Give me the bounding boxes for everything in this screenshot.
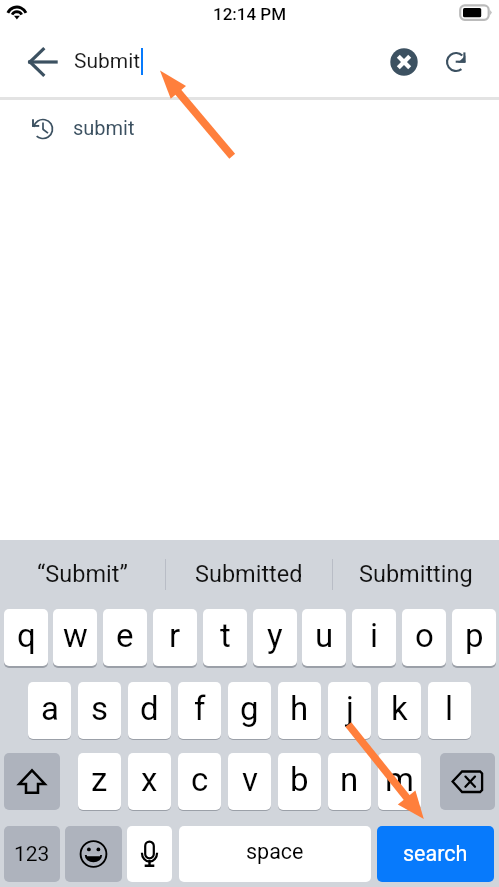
button[interactable]: “Submit” bbox=[0, 540, 165, 609]
button[interactable]: e bbox=[103, 609, 147, 666]
button[interactable]: j bbox=[328, 682, 371, 739]
staticText: 123 bbox=[14, 842, 50, 867]
button[interactable]: Submitted bbox=[166, 540, 332, 609]
staticText: k bbox=[391, 689, 408, 728]
button[interactable]: space bbox=[179, 826, 371, 882]
button[interactable]: search bbox=[377, 826, 494, 882]
staticText: l bbox=[445, 689, 454, 728]
staticText: submit bbox=[73, 116, 135, 139]
button[interactable]: q bbox=[4, 609, 48, 666]
button[interactable]: Clear bbox=[385, 43, 423, 81]
staticText: o bbox=[415, 616, 434, 655]
button[interactable]: n bbox=[328, 753, 371, 810]
staticText: x bbox=[141, 760, 158, 799]
button[interactable]: submit bbox=[0, 100, 499, 159]
staticText: a bbox=[41, 689, 59, 728]
button[interactable]: x bbox=[128, 753, 171, 810]
staticText: m bbox=[385, 760, 414, 799]
button[interactable]: o bbox=[402, 609, 446, 666]
button[interactable]: d bbox=[128, 682, 171, 739]
staticText: q bbox=[17, 616, 36, 655]
button[interactable]: s bbox=[78, 682, 121, 739]
button[interactable]: v bbox=[228, 753, 271, 810]
button[interactable]: u bbox=[302, 609, 346, 666]
staticText: 12:14 PM bbox=[213, 4, 287, 24]
staticText: c bbox=[191, 760, 209, 799]
staticText: space bbox=[246, 839, 304, 864]
button[interactable]: Shift bbox=[4, 753, 60, 810]
staticText: i bbox=[370, 616, 379, 655]
button[interactable]: y bbox=[253, 609, 297, 666]
button[interactable]: t bbox=[203, 609, 247, 666]
button[interactable]: Refresh bbox=[437, 43, 475, 81]
button[interactable]: Submitting bbox=[333, 540, 499, 609]
staticText: j bbox=[346, 689, 354, 728]
button[interactable]: i bbox=[352, 609, 396, 666]
staticText: z bbox=[91, 760, 108, 799]
staticText: e bbox=[116, 616, 134, 655]
staticText: “Submit” bbox=[37, 560, 128, 588]
staticText: s bbox=[91, 689, 109, 728]
button[interactable]: c bbox=[178, 753, 221, 810]
button[interactable]: w bbox=[53, 609, 97, 666]
button[interactable]: f bbox=[178, 682, 221, 739]
button[interactable]: g bbox=[228, 682, 271, 739]
button[interactable]: h bbox=[278, 682, 321, 739]
button[interactable]: p bbox=[452, 609, 496, 666]
staticText: f bbox=[194, 689, 206, 728]
button[interactable]: Emoji bbox=[65, 826, 122, 882]
button[interactable]: k bbox=[378, 682, 421, 739]
button[interactable]: 123 bbox=[4, 826, 60, 882]
staticText: p bbox=[465, 616, 484, 655]
staticText: u bbox=[315, 616, 334, 655]
button[interactable]: a bbox=[28, 682, 71, 739]
staticText: h bbox=[290, 689, 309, 728]
button[interactable]: r bbox=[153, 609, 197, 666]
staticText: Submit bbox=[74, 49, 141, 74]
staticText: Submitting bbox=[359, 560, 473, 588]
staticText: t bbox=[220, 616, 231, 655]
staticText: n bbox=[340, 760, 359, 799]
button[interactable]: Backspace bbox=[440, 753, 495, 810]
staticText: y bbox=[267, 616, 283, 655]
button[interactable]: z bbox=[78, 753, 121, 810]
staticText: d bbox=[140, 689, 159, 728]
staticText: search bbox=[403, 841, 468, 866]
staticText: b bbox=[290, 760, 309, 799]
staticText: v bbox=[242, 760, 258, 799]
staticText: w bbox=[63, 616, 88, 655]
staticText: r bbox=[169, 616, 181, 655]
button[interactable]: m bbox=[378, 753, 421, 810]
button[interactable]: Back bbox=[22, 41, 64, 83]
button[interactable]: Dictate bbox=[127, 826, 172, 882]
button[interactable]: b bbox=[278, 753, 321, 810]
button[interactable]: l bbox=[428, 682, 471, 739]
staticText: g bbox=[240, 689, 259, 728]
staticText: Submitted bbox=[195, 560, 303, 588]
